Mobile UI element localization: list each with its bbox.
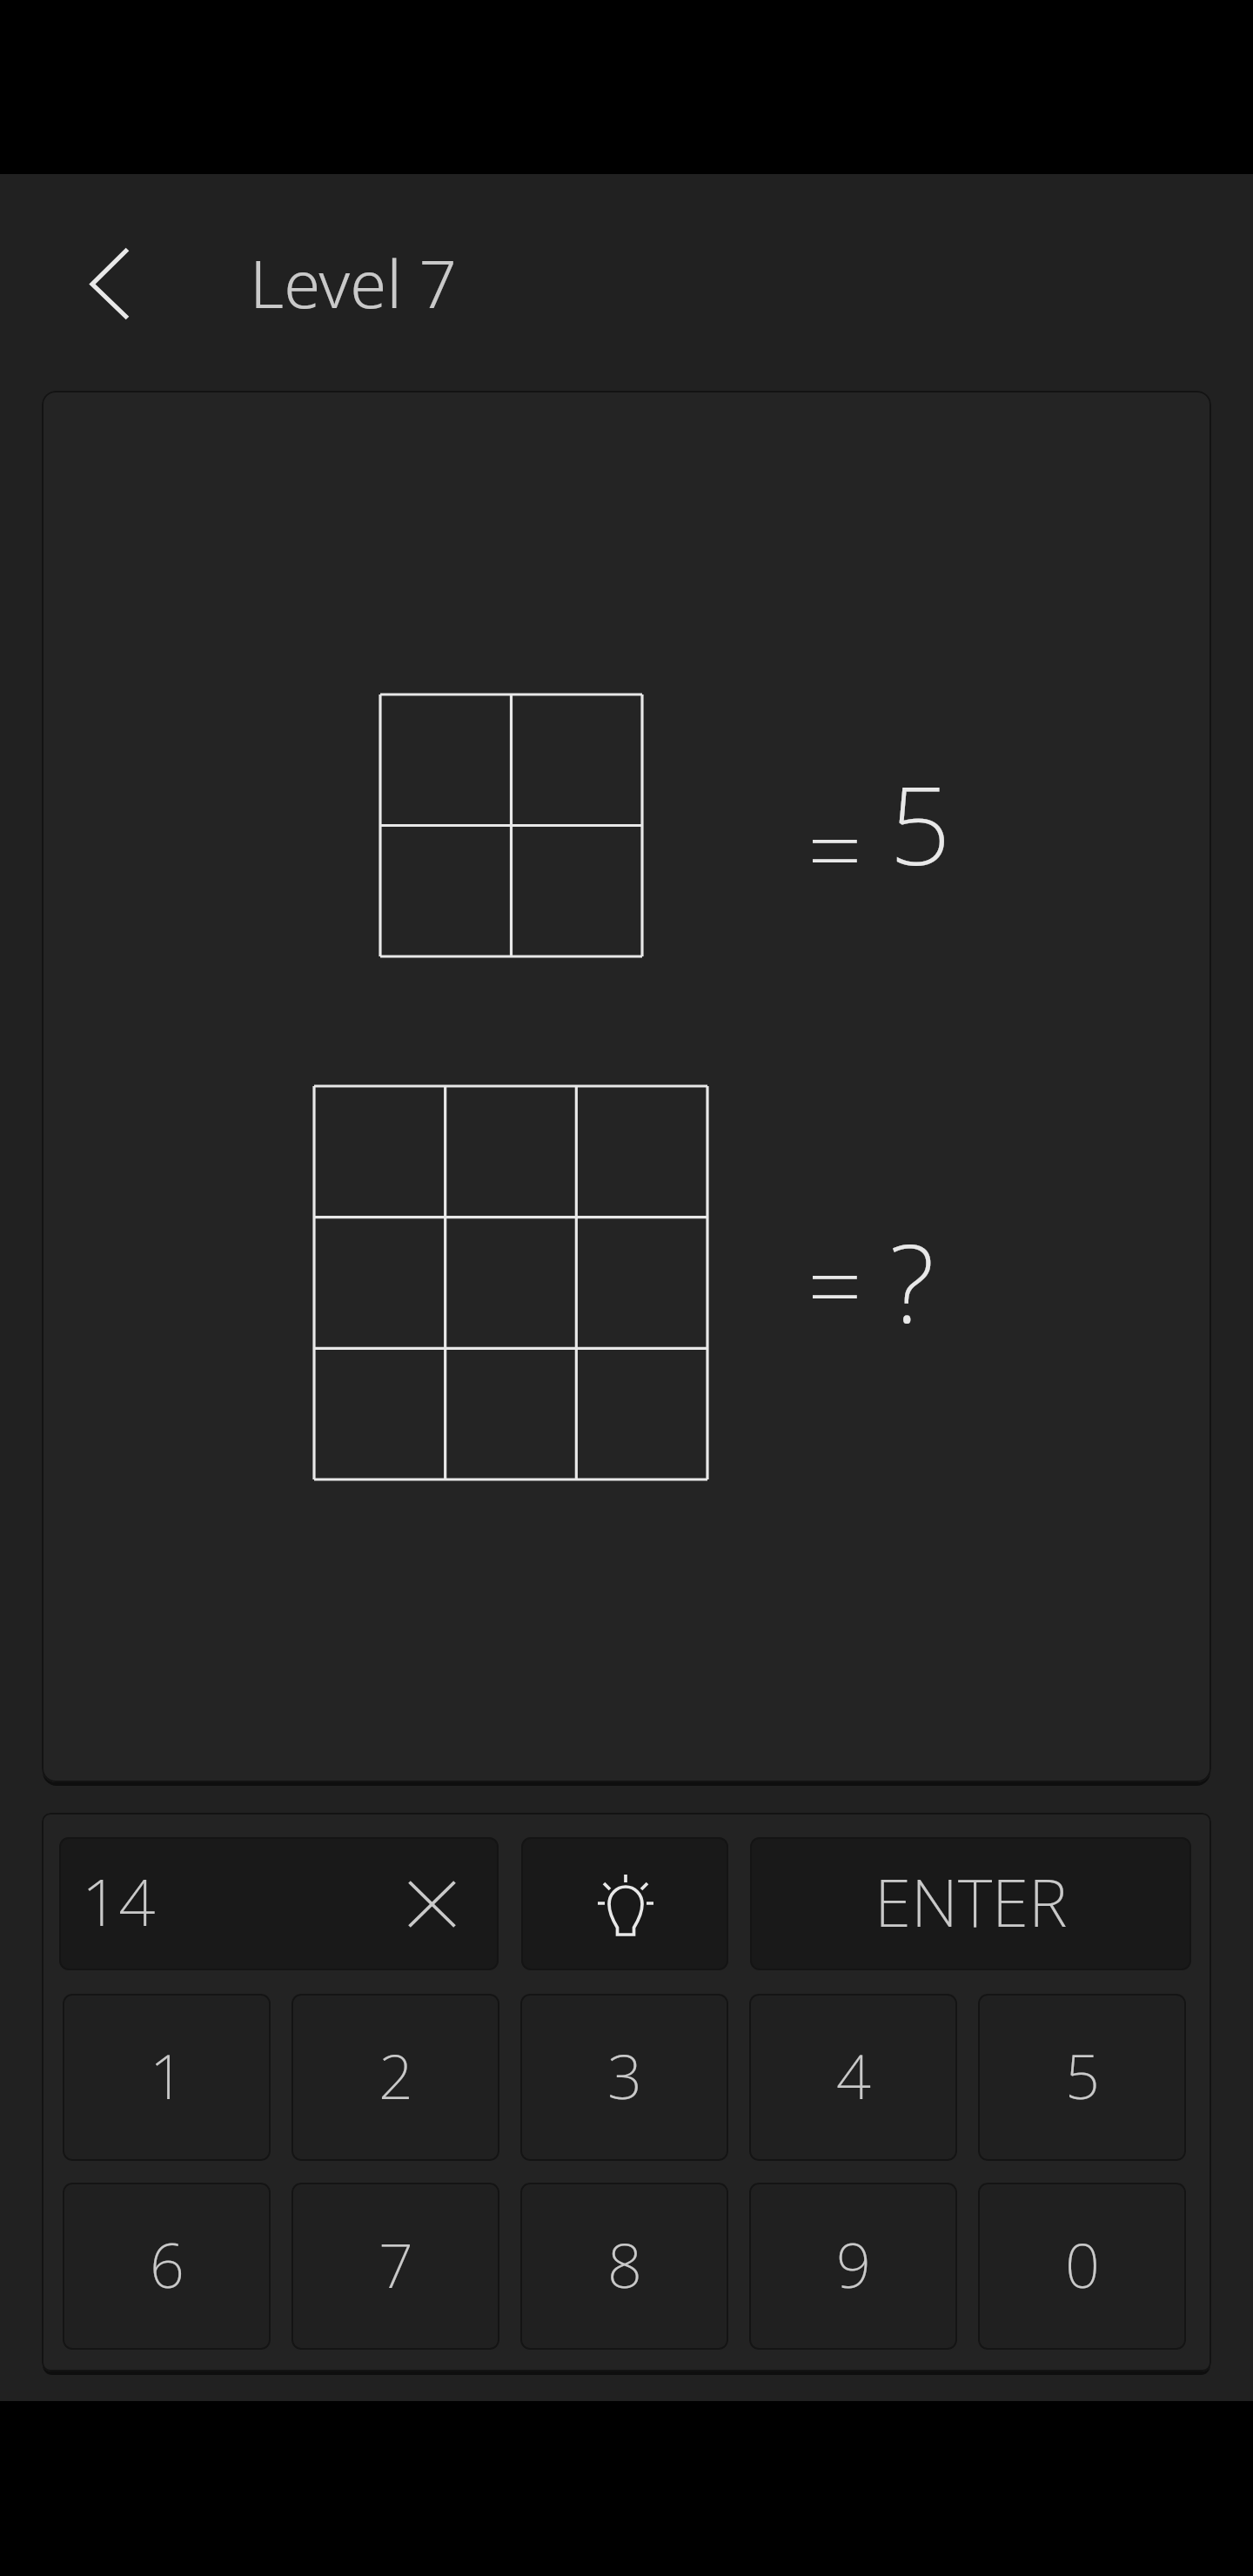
button[interactable]: 6 — [63, 2183, 271, 2350]
staticText: 3 — [607, 2034, 642, 2116]
button[interactable]: 0 — [978, 2183, 1186, 2350]
staticText: = — [807, 1218, 862, 1349]
button[interactable]: 7 — [291, 2183, 499, 2350]
staticText: 0 — [1065, 2223, 1100, 2305]
staticText: 6 — [150, 2223, 184, 2305]
button[interactable]: Clear — [375, 1848, 490, 1961]
staticText: 9 — [836, 2223, 871, 2305]
staticText: 1 — [150, 2034, 184, 2116]
button[interactable]: 9 — [749, 2183, 957, 2350]
staticText: 7 — [379, 2223, 413, 2305]
staticText: 5 — [889, 749, 951, 896]
staticText: ENTER — [874, 1856, 1068, 1947]
button[interactable]: Back — [40, 227, 151, 339]
staticText: 14 — [82, 1857, 156, 1945]
button[interactable]: 8 — [520, 2183, 728, 2350]
staticText: 8 — [607, 2223, 642, 2305]
staticText: ? — [889, 1207, 935, 1354]
button[interactable]: ENTER — [750, 1837, 1191, 1970]
button[interactable]: 4 — [749, 1994, 957, 2161]
button[interactable]: Hint — [521, 1837, 728, 1970]
staticText: 4 — [836, 2034, 871, 2116]
button[interactable]: 3 — [520, 1994, 728, 2161]
button[interactable]: 1 — [63, 1994, 271, 2161]
staticText: = — [807, 782, 862, 913]
staticText: 2 — [379, 2034, 413, 2116]
button[interactable]: 2 — [291, 1994, 499, 2161]
button[interactable]: 14 — [59, 1837, 499, 1970]
staticText: Level 7 — [250, 238, 457, 328]
staticText: 5 — [1065, 2034, 1100, 2116]
button[interactable]: 5 — [978, 1994, 1186, 2161]
